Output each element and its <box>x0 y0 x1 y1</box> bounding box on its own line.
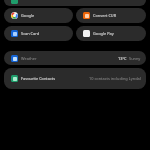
button[interactable]: Favourite Contacts <box>4 68 146 89</box>
staticText: Sunny <box>129 56 141 61</box>
staticText: Scan Card <box>21 31 40 36</box>
button[interactable]: Weather <box>4 51 146 65</box>
staticText: Google <box>21 13 35 18</box>
button[interactable] <box>4 0 146 6</box>
staticText: 13°C <box>118 56 127 61</box>
staticText: Weather <box>21 56 37 61</box>
other: Google <box>11 12 18 19</box>
button[interactable]: Google Pay <box>76 26 146 41</box>
staticText: Convert CUR <box>93 13 117 18</box>
staticText: Google Pay <box>93 31 114 36</box>
button[interactable]: Scan Card <box>4 26 73 41</box>
button[interactable]: Convert CUR <box>76 8 146 23</box>
button[interactable]: Google <box>4 8 73 23</box>
staticText: 10 contacts including Lyndal <box>89 76 141 81</box>
staticText: Favourite Contacts <box>21 76 56 81</box>
